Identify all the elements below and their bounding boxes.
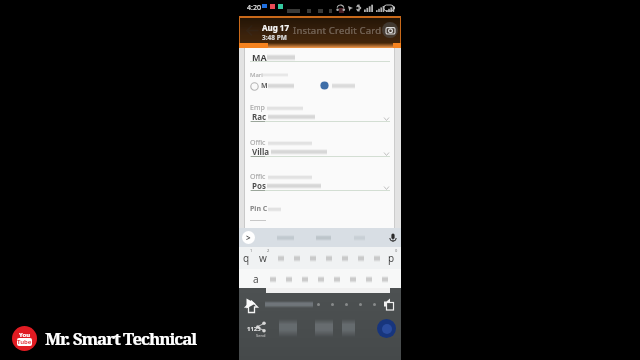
- button[interactable]: [264, 269, 281, 289]
- button[interactable]: Emp: [239, 103, 401, 129]
- staticText: Mr. Smart Technical: [45, 327, 197, 350]
- button[interactable]: [321, 247, 337, 269]
- button[interactable]: a: [247, 269, 264, 289]
- button[interactable]: Back: [244, 22, 260, 38]
- staticText: Send: [256, 333, 266, 338]
- staticText: 2: [267, 248, 270, 253]
- button[interactable]: Screenshot camera: [382, 22, 398, 38]
- staticText: z: [266, 292, 271, 306]
- button[interactable]: p: [385, 247, 401, 269]
- staticText: 1123: [247, 325, 261, 333]
- staticText: Tube: [17, 338, 32, 346]
- staticText: p: [388, 251, 395, 265]
- staticText: Pin C: [250, 204, 268, 214]
- staticText: Rac: [252, 111, 267, 122]
- staticText: Offic: [250, 172, 266, 182]
- button[interactable]: [297, 269, 313, 289]
- button[interactable]: [273, 247, 289, 269]
- staticText: M: [261, 81, 268, 91]
- staticText: Aug 17: [262, 22, 290, 33]
- button[interactable]: w: [256, 247, 273, 269]
- button[interactable]: Account: [377, 319, 396, 338]
- button[interactable]: [313, 269, 329, 289]
- button[interactable]: [377, 269, 393, 289]
- button[interactable]: [347, 289, 364, 309]
- button[interactable]: [361, 269, 377, 289]
- staticText: Villa: [252, 146, 270, 157]
- button[interactable]: Play: [244, 298, 259, 313]
- button[interactable]: [281, 269, 297, 289]
- button[interactable]: Expand suggestions: [242, 231, 255, 244]
- button[interactable]: M: [250, 81, 294, 91]
- staticText: MA: [252, 51, 267, 63]
- button[interactable]: [320, 81, 355, 90]
- button[interactable]: [369, 247, 385, 269]
- staticText: 1: [250, 248, 253, 253]
- button[interactable]: q: [239, 247, 256, 269]
- button[interactable]: [353, 247, 369, 269]
- staticText: >: [246, 232, 251, 243]
- button[interactable]: Offic: [239, 138, 401, 164]
- staticText: 3:48 PM: [262, 33, 287, 42]
- staticText: q: [243, 251, 250, 265]
- button[interactable]: [364, 289, 381, 309]
- button[interactable]: [305, 247, 321, 269]
- staticText: You: [19, 331, 31, 339]
- button[interactable]: [337, 247, 353, 269]
- button[interactable]: [289, 247, 305, 269]
- staticText: Mari: [250, 71, 263, 79]
- staticText: w: [259, 251, 267, 265]
- button[interactable]: [345, 269, 361, 289]
- staticText: Emp: [250, 103, 265, 113]
- staticText: Instant Credit Card: [293, 24, 382, 37]
- button[interactable]: Volume: [383, 298, 396, 311]
- button[interactable]: [329, 269, 345, 289]
- staticText: a: [253, 272, 259, 286]
- button[interactable]: [313, 289, 330, 309]
- button[interactable]: Offic: [239, 172, 401, 198]
- button[interactable]: Voice input: [388, 233, 398, 243]
- staticText: 4:20: [247, 3, 261, 13]
- button[interactable]: [295, 289, 313, 309]
- staticText: 0: [395, 248, 398, 253]
- button[interactable]: Send: [255, 321, 267, 338]
- staticText: Offic: [250, 138, 266, 148]
- staticText: Pos: [252, 180, 266, 191]
- button[interactable]: [330, 289, 347, 309]
- button[interactable]: [277, 289, 295, 309]
- button[interactable]: z: [259, 289, 277, 309]
